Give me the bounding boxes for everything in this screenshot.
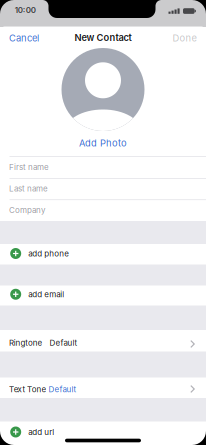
staticText: add phone bbox=[28, 249, 69, 258]
staticText: Add Photo bbox=[79, 137, 127, 148]
button[interactable]: Done bbox=[172, 32, 196, 43]
button[interactable]: add url bbox=[0, 421, 206, 442]
button[interactable]: Ringtone bbox=[0, 330, 206, 351]
staticText: Last name bbox=[9, 184, 48, 193]
button[interactable]: Company bbox=[0, 199, 206, 221]
staticText: Text Tone bbox=[9, 384, 46, 394]
staticText: add url bbox=[28, 427, 54, 437]
staticText: Cancel bbox=[9, 32, 39, 43]
button[interactable]: add phone bbox=[0, 244, 206, 263]
staticText: New Contact bbox=[74, 32, 131, 43]
button[interactable]: add email bbox=[0, 285, 206, 303]
button[interactable]: Text Tone bbox=[0, 377, 206, 398]
button[interactable]: Cancel bbox=[9, 32, 39, 43]
staticText: Default bbox=[48, 384, 76, 394]
button[interactable]: First name bbox=[0, 156, 206, 178]
staticText: Default bbox=[49, 338, 77, 347]
button[interactable]: Add Photo bbox=[79, 137, 127, 148]
staticText: add email bbox=[28, 289, 64, 299]
staticText: Company bbox=[9, 205, 45, 215]
staticText: First name bbox=[9, 162, 49, 172]
staticText: Ringtone bbox=[9, 338, 43, 347]
staticText: 10:00 bbox=[15, 5, 36, 15]
staticText: Done bbox=[172, 32, 196, 43]
button[interactable]: Last name bbox=[0, 178, 206, 199]
button[interactable]: Add Photo bbox=[61, 48, 144, 131]
